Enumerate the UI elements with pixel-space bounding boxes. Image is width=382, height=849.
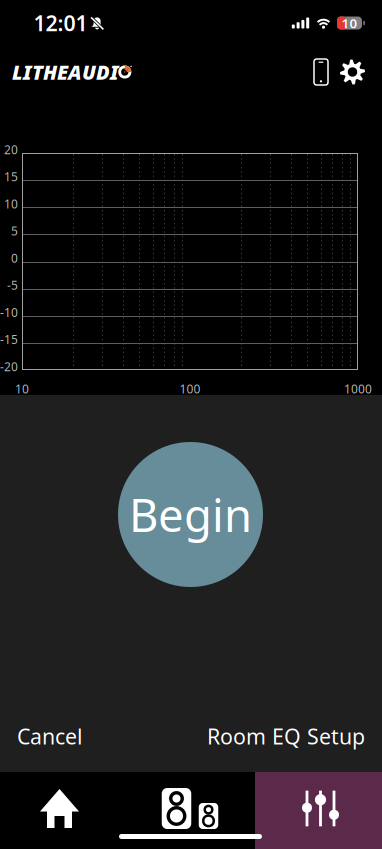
staticText: 20	[4, 141, 18, 157]
button[interactable]: Cancel	[0, 712, 100, 760]
staticText: Begin	[129, 484, 252, 545]
staticText: 12:01	[33, 9, 87, 37]
staticText: 10	[341, 14, 357, 32]
button[interactable]: Settings	[336, 55, 369, 88]
staticText: 10	[15, 381, 29, 397]
staticText: Cancel	[17, 722, 83, 750]
button[interactable]: Speakers	[127, 772, 255, 849]
button[interactable]: Begin	[118, 442, 263, 587]
staticText: 10	[4, 196, 18, 212]
button[interactable]: Home	[0, 772, 127, 849]
staticText: LITHEAUDI	[12, 59, 119, 85]
staticText: 15	[4, 169, 18, 185]
staticText: 5	[11, 223, 18, 239]
staticText: 100	[179, 381, 200, 397]
staticText: 1000	[344, 381, 372, 397]
button[interactable]: Room EQ Setup	[190, 712, 382, 760]
staticText: Room EQ Setup	[207, 722, 365, 750]
button[interactable]: Equaliser	[255, 772, 382, 849]
staticText: -20	[0, 358, 18, 374]
staticText: -15	[0, 331, 18, 347]
button[interactable]: Device	[308, 55, 334, 89]
staticText: -5	[7, 277, 18, 293]
staticText: 0	[11, 250, 18, 266]
staticText: -10	[0, 304, 18, 320]
